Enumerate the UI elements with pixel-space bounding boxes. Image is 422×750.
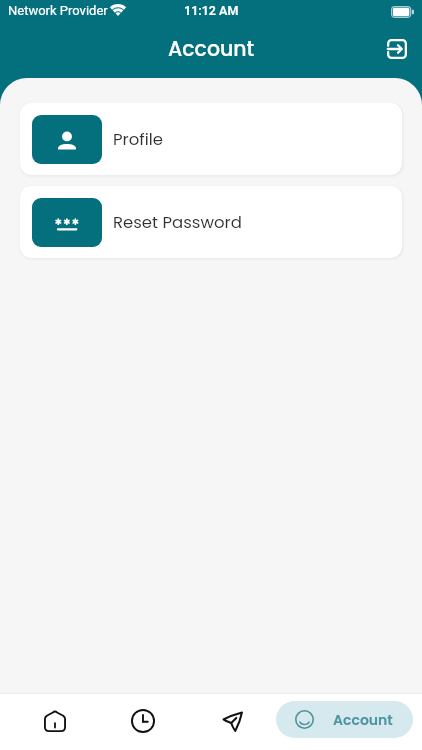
staticText: Account: [168, 34, 255, 63]
button[interactable]: Reset Password: [20, 186, 402, 258]
button[interactable]: History: [121, 699, 165, 743]
staticText: Account: [333, 710, 393, 730]
staticText: Network Provider: [8, 3, 108, 18]
button[interactable]: Logout: [375, 27, 419, 71]
button[interactable]: Home: [33, 699, 77, 743]
button[interactable]: Send: [210, 699, 254, 743]
staticText: Profile: [113, 128, 164, 151]
staticText: Reset Password: [113, 211, 242, 234]
button[interactable]: Profile: [20, 103, 402, 175]
staticText: 11:12 AM: [184, 3, 239, 18]
button[interactable]: Account: [276, 701, 413, 738]
